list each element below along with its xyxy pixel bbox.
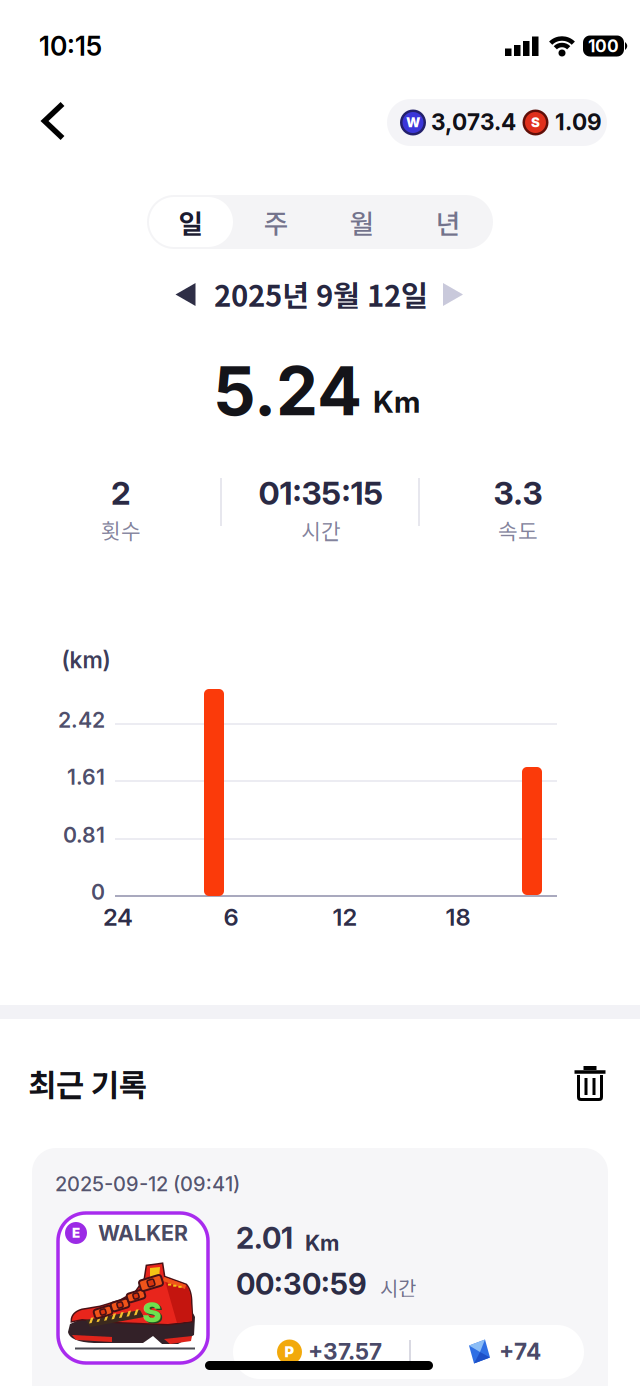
button[interactable]: Back: [42, 103, 65, 139]
staticText: 속도: [498, 515, 538, 545]
staticText: 12: [332, 902, 357, 931]
staticText: 00:30:59: [236, 1266, 367, 1302]
staticText: 년: [435, 203, 460, 241]
staticText: 최근 기록: [28, 1061, 147, 1105]
staticText: 월: [349, 203, 374, 241]
staticText: 0: [91, 879, 105, 905]
staticText: 1.61: [67, 764, 105, 790]
staticText: 2: [111, 474, 131, 512]
staticText: 주: [263, 203, 288, 241]
staticText: P: [284, 1343, 294, 1361]
staticText: 10:15: [39, 30, 102, 62]
staticText: 1.09: [555, 108, 602, 136]
button[interactable]: 월: [320, 197, 404, 247]
staticText: 시간: [380, 1272, 416, 1301]
staticText: WALKER: [98, 1220, 188, 1246]
staticText: S: [142, 1295, 161, 1329]
staticText: Km: [305, 1230, 339, 1256]
button[interactable]: Wallet balance: [387, 99, 607, 146]
staticText: 01:35:15: [258, 474, 383, 512]
staticText: 0.81: [63, 822, 105, 848]
button[interactable]: 주: [234, 197, 318, 247]
staticText: 2025년 9월 12일: [214, 273, 428, 315]
staticText: 5.24: [213, 351, 362, 431]
staticText: 3,073.4: [431, 108, 516, 136]
staticText: (km): [61, 646, 110, 674]
staticText: 24: [103, 902, 133, 931]
button[interactable]: Next day: [443, 283, 463, 306]
staticText: 일: [178, 203, 203, 241]
button[interactable]: Previous day: [175, 283, 195, 306]
staticText: Km: [373, 384, 420, 420]
button[interactable]: 2025-09-12 (09:41): [0, 0, 640, 1386]
button[interactable]: 일: [149, 197, 233, 247]
staticText: 3.3: [493, 474, 542, 512]
staticText: 2.01: [236, 1220, 293, 1256]
staticText: +37.57: [308, 1338, 382, 1365]
staticText: 6: [223, 902, 238, 931]
staticText: S: [531, 114, 540, 130]
staticText: 100: [588, 35, 619, 56]
button[interactable]: 년: [406, 197, 490, 247]
staticText: 2025-09-12 (09:41): [55, 1172, 240, 1196]
staticText: +74: [499, 1338, 541, 1365]
button[interactable]: Delete records: [574, 1066, 605, 1102]
staticText: 횟수: [101, 515, 141, 545]
staticText: E: [72, 1225, 80, 1241]
staticText: 2.42: [58, 707, 105, 733]
staticText: W: [406, 114, 420, 130]
staticText: 시간: [301, 515, 341, 545]
staticText: S: [144, 1296, 163, 1330]
staticText: 18: [445, 902, 470, 931]
